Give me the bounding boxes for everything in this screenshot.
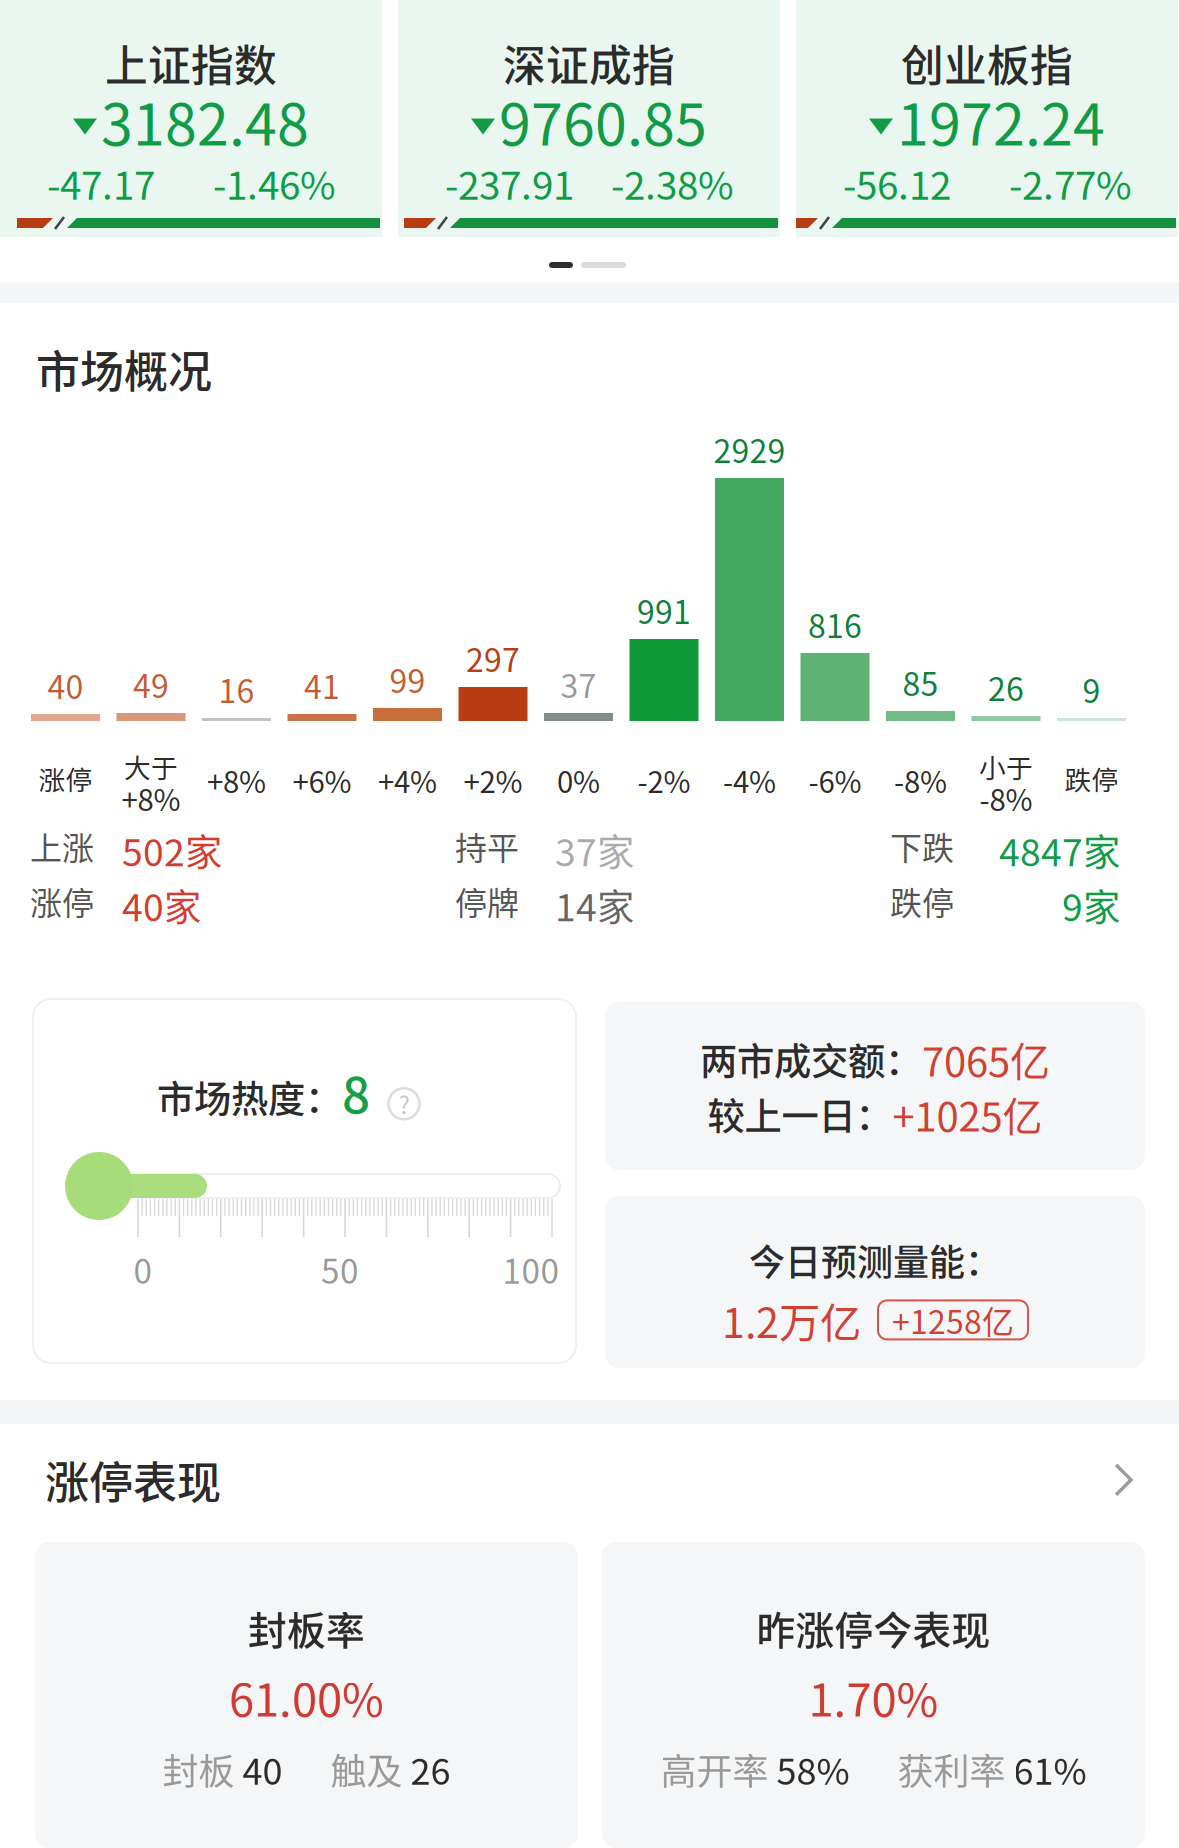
staticText: ? — [398, 1086, 409, 1121]
staticText: -2.38% — [611, 155, 734, 211]
staticText: 大于 — [124, 747, 178, 786]
staticText: 昨涨停今表现 — [756, 1600, 990, 1656]
staticText: -56.12 — [843, 155, 951, 211]
button[interactable]: 上证指数 — [0, 0, 382, 237]
staticText: -2% — [637, 759, 690, 801]
staticText: 1.2万亿 — [722, 1290, 861, 1350]
staticText: 涨停 — [30, 878, 94, 924]
staticText: -4% — [723, 759, 776, 801]
staticText: 9家 — [1062, 878, 1120, 932]
staticText: 涨停 — [38, 759, 92, 798]
staticText: 40 — [47, 662, 83, 708]
staticText: 两市成交额： — [700, 1032, 922, 1086]
staticText: 今日预测量能： — [749, 1234, 1001, 1286]
button[interactable]: 深证成指 — [398, 0, 780, 237]
staticText: 上涨 — [30, 823, 94, 869]
staticText: 14家 — [555, 878, 634, 932]
staticText: 26 — [410, 1743, 450, 1795]
button[interactable]: 涨停表现 — [0, 0, 1179, 86]
staticText: 深证成指 — [503, 32, 675, 94]
staticText: 2929 — [713, 426, 785, 472]
staticText: 4847家 — [999, 823, 1120, 877]
staticText: 封板率 — [248, 1600, 365, 1656]
staticText: 小于 — [979, 747, 1033, 786]
staticText: 49 — [133, 661, 169, 707]
staticText: -237.91 — [445, 155, 574, 211]
staticText: 7065亿 — [922, 1030, 1050, 1088]
staticText: 1972.24 — [897, 79, 1105, 162]
staticText: 1.70% — [808, 1664, 938, 1730]
staticText: +6% — [292, 759, 351, 801]
staticText: 40家 — [122, 878, 201, 932]
staticText: 0 — [133, 1245, 152, 1293]
staticText: 50 — [321, 1245, 359, 1293]
staticText: -2.77% — [1009, 155, 1132, 211]
staticText: 3182.48 — [101, 79, 309, 162]
staticText: 816 — [808, 601, 862, 647]
staticText: 9760.85 — [499, 79, 707, 162]
staticText: 跌停 — [1064, 759, 1118, 798]
staticText: +2% — [463, 759, 522, 801]
staticText: +8% — [207, 759, 266, 801]
staticText: +4% — [378, 759, 437, 801]
staticText: 涨停表现 — [45, 1448, 221, 1512]
staticText: 封板 — [162, 1743, 234, 1795]
staticText: 停牌 — [455, 878, 519, 924]
staticText: 0% — [557, 759, 600, 801]
staticText: 跌停 — [890, 878, 954, 924]
staticText: 61.00% — [229, 1664, 384, 1730]
staticText: 上证指数 — [105, 32, 277, 94]
staticText: -1.46% — [213, 155, 336, 211]
staticText: 37 — [560, 661, 596, 707]
button[interactable]: 昨涨停今表现 — [602, 1542, 1145, 1848]
staticText: 100 — [502, 1245, 559, 1293]
button[interactable]: 创业板指 — [796, 0, 1178, 237]
staticText: -47.17 — [47, 155, 155, 211]
staticText: -8% — [979, 777, 1032, 819]
staticText: 41 — [304, 662, 340, 708]
staticText: 9 — [1082, 666, 1100, 712]
staticText: 市场热度： — [157, 1070, 342, 1124]
staticText: 较上一日： — [707, 1087, 892, 1141]
staticText: 创业板指 — [901, 32, 1073, 94]
staticText: 下跌 — [890, 823, 954, 869]
staticText: 16 — [218, 666, 254, 712]
staticText: 持平 — [455, 823, 519, 869]
staticText: 58% — [776, 1743, 849, 1795]
staticText: +8% — [121, 777, 180, 819]
staticText: 502家 — [122, 823, 222, 877]
staticText: 8 — [342, 1056, 370, 1127]
staticText: 61% — [1013, 1743, 1086, 1795]
staticText: 991 — [637, 587, 691, 633]
staticText: -6% — [808, 759, 861, 801]
staticText: -8% — [894, 759, 947, 801]
staticText: +1025亿 — [892, 1085, 1042, 1143]
staticText: +1258亿 — [892, 1297, 1014, 1343]
staticText: 26 — [988, 664, 1024, 710]
staticText: 297 — [466, 635, 520, 681]
button[interactable]: 封板率 — [35, 1542, 578, 1848]
staticText: 获利率 — [897, 1743, 1005, 1795]
staticText: 37家 — [555, 823, 634, 877]
staticText: 85 — [902, 659, 938, 705]
staticText: 99 — [389, 656, 425, 702]
staticText: 触及 — [330, 1743, 402, 1795]
staticText: 40 — [242, 1743, 282, 1795]
staticText: 高开率 — [660, 1743, 768, 1795]
staticText: 市场概况 — [36, 337, 212, 401]
